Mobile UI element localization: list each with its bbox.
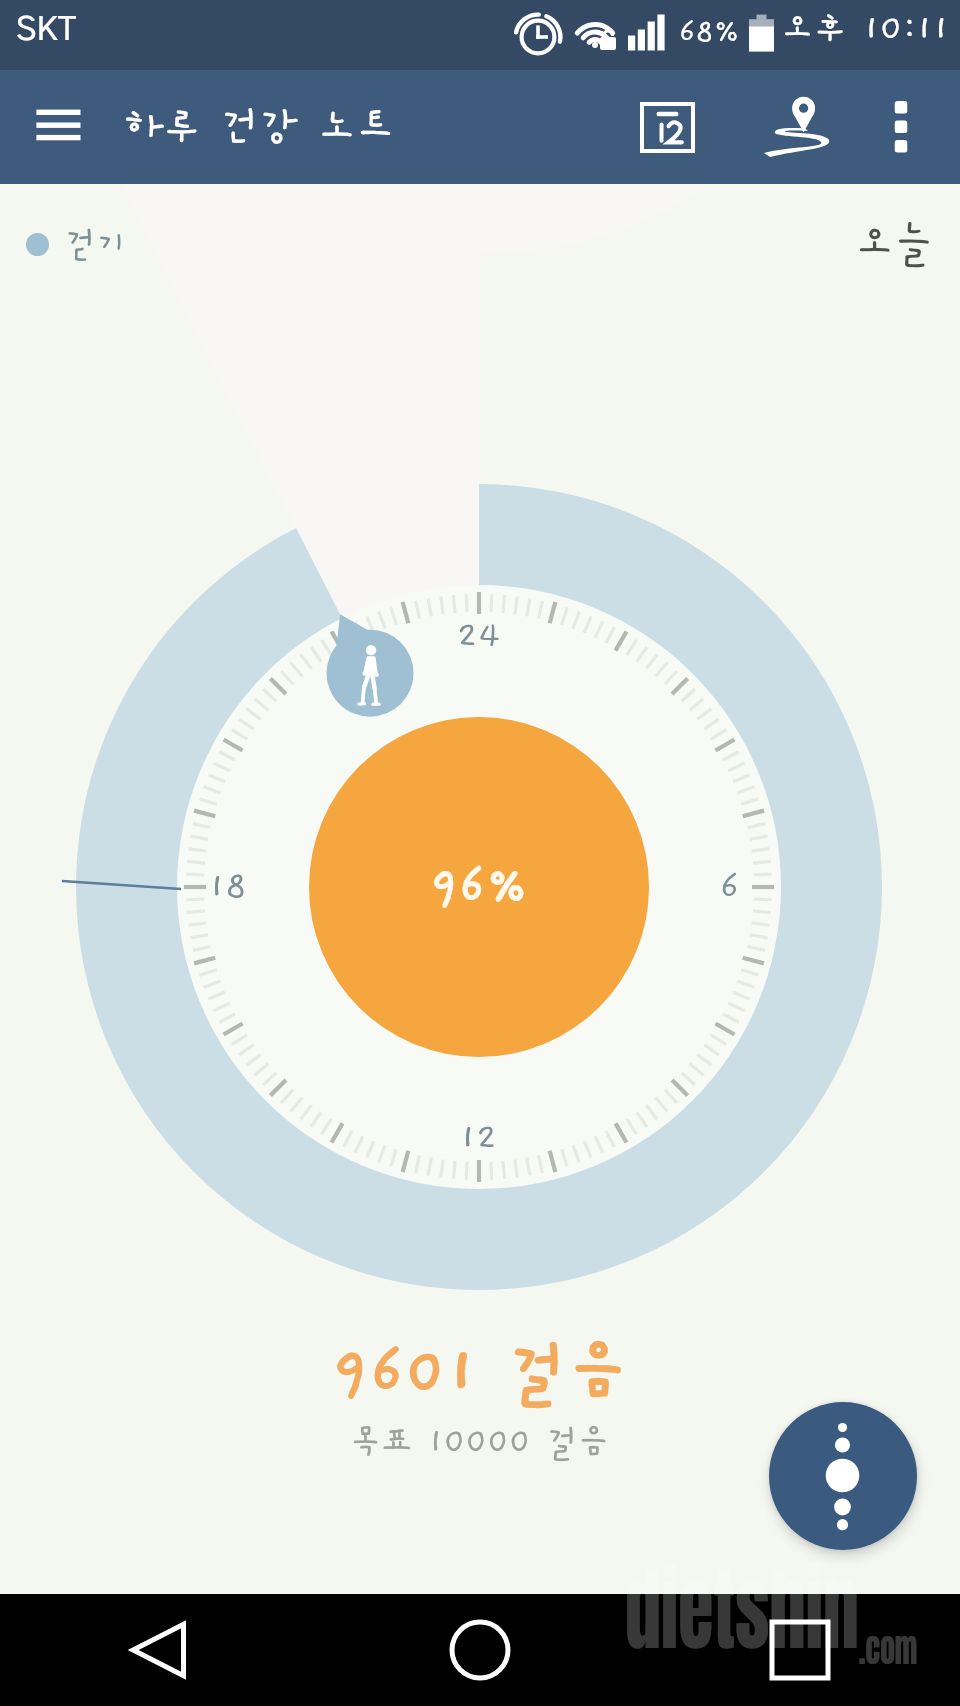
staticText: 목표 10000 걸음 <box>350 1423 610 1461</box>
button[interactable]: Add record <box>769 1402 917 1550</box>
button[interactable]: 오늘 <box>843 220 934 268</box>
button[interactable]: 걷기 <box>26 225 140 263</box>
staticText: 12 <box>460 1118 498 1158</box>
button[interactable]: Route <box>743 70 843 184</box>
button[interactable]: Recents <box>640 1594 960 1706</box>
staticText: 9601 걸음 <box>332 1336 629 1409</box>
staticText: dietshin <box>625 1540 859 1679</box>
button[interactable]: Back <box>0 1594 320 1706</box>
staticText: .com <box>859 1619 917 1676</box>
button[interactable]: Menu <box>0 70 100 184</box>
staticText: 6 <box>720 867 740 907</box>
button[interactable]: Calendar <box>615 70 719 184</box>
staticText: 24 <box>457 616 501 656</box>
staticText: 오늘 <box>855 220 934 268</box>
staticText: 18 <box>209 867 247 907</box>
staticText: 96% <box>430 859 529 915</box>
staticText: SKT <box>16 14 77 47</box>
staticText: 하루 건강 노트 <box>124 104 395 151</box>
button[interactable]: More options <box>861 70 941 184</box>
staticText: 오후 10:11 <box>781 9 950 49</box>
button[interactable]: Home <box>320 1594 640 1706</box>
staticText: 68% <box>679 15 740 49</box>
staticText: 걷기 <box>65 225 128 263</box>
